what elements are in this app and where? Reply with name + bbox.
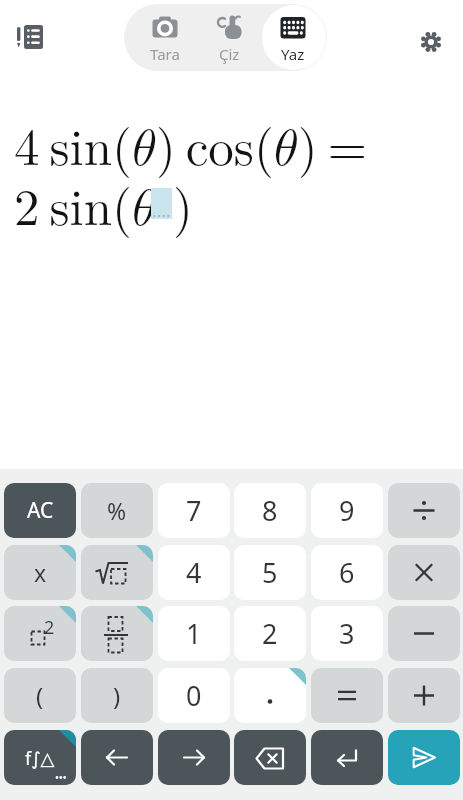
staticText: ( xyxy=(36,679,44,712)
button[interactable] xyxy=(388,545,460,600)
staticText: 2 xyxy=(44,615,55,640)
button[interactable]: x xyxy=(4,545,76,600)
button[interactable] xyxy=(311,668,383,723)
button[interactable] xyxy=(388,730,460,785)
button[interactable] xyxy=(388,668,460,723)
staticText: Çiz xyxy=(219,44,240,64)
button[interactable] xyxy=(417,28,445,56)
button[interactable]: ( xyxy=(4,668,76,723)
button[interactable]: 6 xyxy=(311,545,383,600)
button[interactable]: % xyxy=(81,483,153,538)
button[interactable]: 2 xyxy=(234,606,306,661)
button[interactable]: Yaz xyxy=(261,6,325,69)
button[interactable]: 7 xyxy=(158,483,230,538)
staticText: Yaz xyxy=(281,44,305,64)
button[interactable]: 5 xyxy=(234,545,306,600)
button[interactable] xyxy=(234,668,306,723)
button[interactable]: Çiz xyxy=(197,6,261,69)
staticText: 3 xyxy=(339,615,355,652)
staticText: Tara xyxy=(150,44,180,64)
staticText: 8 xyxy=(262,492,278,529)
staticText: 5 xyxy=(262,554,278,591)
staticText: AC xyxy=(27,496,54,525)
button[interactable] xyxy=(234,730,306,785)
button[interactable]: 4 xyxy=(158,545,230,600)
staticText: 2 sin(𝜃 xyxy=(14,168,156,240)
button[interactable]: 8 xyxy=(234,483,306,538)
staticText: 9 xyxy=(339,492,355,529)
button[interactable] xyxy=(388,606,460,661)
staticText: 7 xyxy=(186,492,202,529)
button[interactable] xyxy=(158,730,230,785)
button[interactable]: Tara xyxy=(133,6,197,69)
button[interactable] xyxy=(81,606,153,661)
button[interactable]: 2 xyxy=(4,606,76,661)
button[interactable]: ) xyxy=(81,668,153,723)
button[interactable]: f∫△ xyxy=(4,730,76,785)
staticText: 0 xyxy=(186,677,202,714)
staticText: f∫△ xyxy=(25,746,55,771)
button[interactable] xyxy=(388,483,460,538)
staticText: 1 xyxy=(186,615,202,652)
button[interactable] xyxy=(81,545,153,600)
button[interactable]: AC xyxy=(4,483,76,538)
button[interactable]: 3 xyxy=(311,606,383,661)
staticText: % xyxy=(107,495,127,526)
button[interactable] xyxy=(81,730,153,785)
staticText: 6 xyxy=(339,554,355,591)
staticText: 4 sin(𝜃) cos(𝜃) = xyxy=(14,108,368,180)
button[interactable] xyxy=(311,730,383,785)
staticText: x xyxy=(34,557,47,588)
button[interactable]: 9 xyxy=(311,483,383,538)
staticText: 2 xyxy=(262,615,278,652)
button[interactable]: 0 xyxy=(158,668,230,723)
button[interactable]: 1 xyxy=(158,606,230,661)
staticText: ) xyxy=(173,168,193,240)
button[interactable] xyxy=(10,22,50,54)
staticText: 4 xyxy=(186,554,202,591)
staticText: ) xyxy=(113,679,121,712)
